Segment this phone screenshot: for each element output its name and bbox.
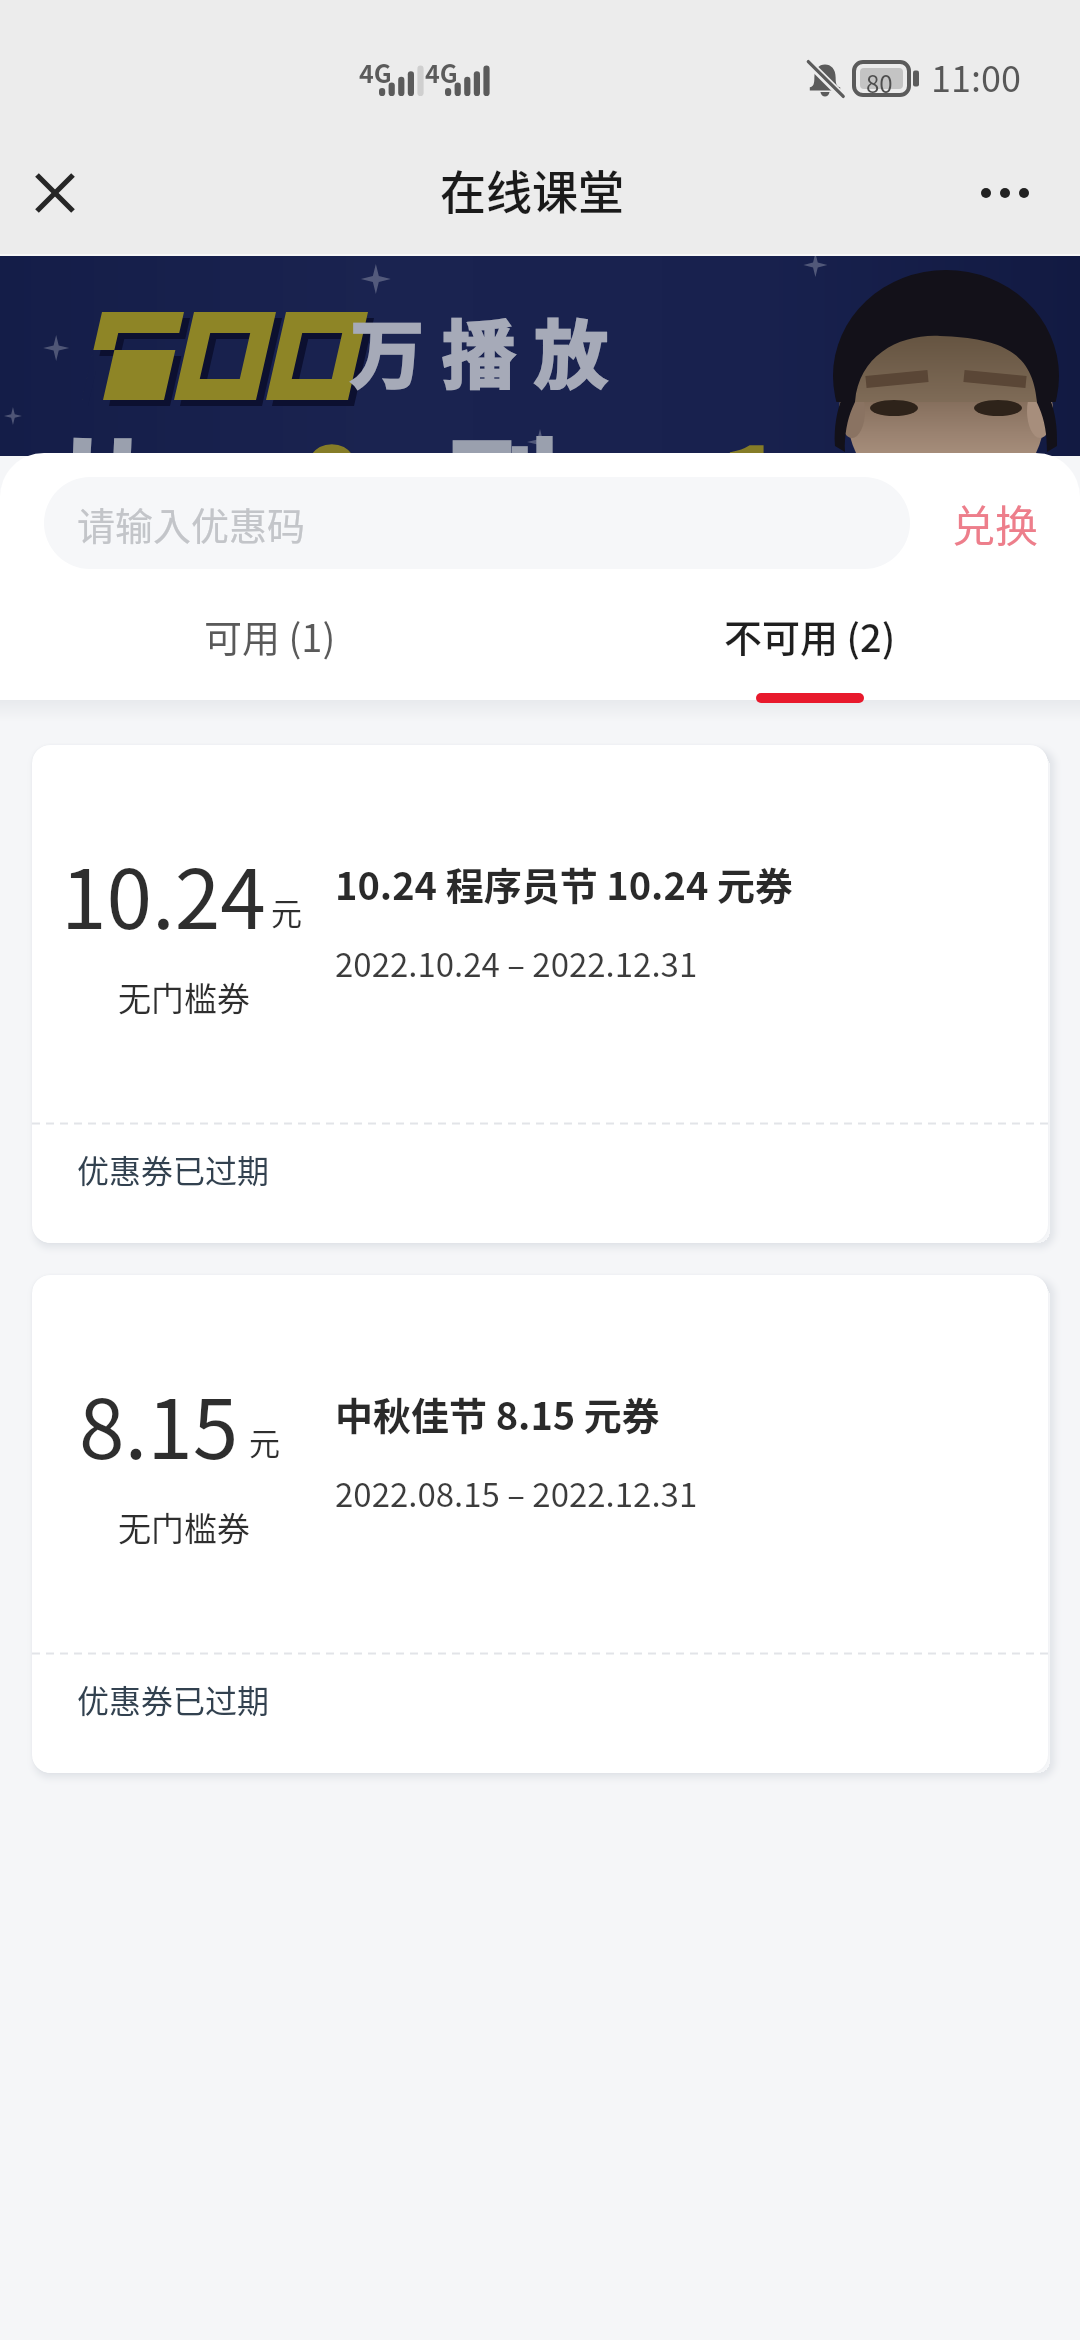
button[interactable]: More options: [962, 150, 1048, 236]
staticText: 4G: [425, 54, 458, 90]
staticText: 优惠券已过期: [77, 1676, 270, 1722]
button[interactable]: 不可用 (2): [540, 569, 1080, 700]
staticText: 请输入优惠码: [77, 496, 306, 551]
staticText: 优惠券已过期: [77, 1146, 270, 1192]
staticText: 可用 (1): [204, 608, 336, 663]
staticText: 元: [271, 889, 302, 934]
staticText: 中秋佳节 8.15 元券: [335, 1386, 660, 1441]
staticText: 4G: [359, 54, 392, 90]
staticText: 10.24: [61, 834, 266, 953]
staticText: 8.15: [79, 1364, 239, 1483]
staticText: 2022.08.15 – 2022.12.31: [335, 1469, 698, 1517]
staticText: 10.24 程序员节 10.24 元券: [335, 856, 793, 911]
button[interactable]: Close: [12, 150, 98, 236]
staticText: 0: [300, 402, 364, 558]
button[interactable]: 8.15: [32, 1275, 1048, 1773]
staticText: 兑换: [952, 492, 1038, 554]
staticText: 到: [450, 402, 559, 558]
button[interactable]: 10.24: [32, 745, 1048, 1243]
staticText: 80: [866, 65, 893, 98]
staticText: 元: [249, 1419, 280, 1464]
button[interactable]: 请输入优惠码: [44, 477, 910, 569]
staticText: 1: [720, 402, 784, 558]
button[interactable]: 兑换: [910, 477, 1080, 569]
staticText: 11:00: [931, 50, 1021, 102]
staticText: 从: [50, 402, 159, 558]
staticText: 无门槛券: [118, 1503, 250, 1551]
button[interactable]: 可用 (1): [0, 569, 540, 700]
staticText: 不可用 (2): [724, 608, 896, 663]
staticText: 在线课堂: [440, 156, 624, 223]
staticText: 2022.10.24 – 2022.12.31: [335, 939, 698, 987]
staticText: 无门槛券: [118, 973, 250, 1021]
staticText: 万播放: [350, 296, 626, 403]
